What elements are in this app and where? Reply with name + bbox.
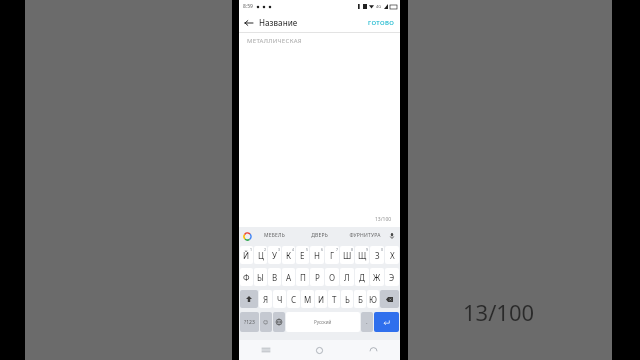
staticText: И [318, 294, 325, 305]
button[interactable]: П [296, 268, 309, 286]
button[interactable]: И [315, 290, 327, 308]
staticText: 4G [376, 4, 382, 9]
button[interactable]: М [301, 290, 314, 308]
staticText: 6 [321, 247, 324, 252]
button[interactable]: ☺ [260, 312, 272, 332]
button[interactable]: Ц [254, 246, 267, 264]
staticText: Э [389, 272, 395, 283]
staticText: Ш [343, 250, 352, 261]
staticText: Ж [373, 272, 381, 283]
button[interactable]: ФУРНИТУРА [342, 227, 387, 244]
staticText: О [329, 272, 336, 283]
staticText: Д [359, 272, 365, 283]
staticText: Ь [345, 294, 350, 305]
staticText: ФУРНИТУРА [349, 232, 381, 239]
button[interactable]: Б [354, 290, 366, 308]
button[interactable]: Enter [374, 312, 399, 332]
staticText: 9 [366, 247, 369, 252]
staticText: М [304, 294, 312, 305]
button[interactable]: Т [328, 290, 340, 308]
button[interactable]: Русский [286, 312, 360, 332]
staticText: 8:59 [243, 3, 253, 10]
button[interactable]: А [282, 268, 295, 286]
button[interactable]: Н [310, 246, 324, 264]
staticText: К [286, 250, 291, 261]
staticText: 0 [381, 247, 384, 252]
staticText: Л [344, 272, 350, 283]
staticText: 7 [336, 247, 339, 252]
staticText: С [291, 294, 297, 305]
staticText: МЕТАЛЛИЧЕСКАЯ [247, 37, 302, 45]
staticText: 13/100 [375, 216, 392, 223]
button[interactable]: Back [346, 340, 400, 360]
button[interactable]: Э [385, 268, 399, 286]
button[interactable]: Google [242, 231, 252, 241]
button[interactable]: ?123 [240, 312, 259, 332]
button[interactable]: Ф [240, 268, 253, 286]
button[interactable]: Р [310, 268, 324, 286]
button[interactable]: Recent apps [239, 340, 292, 360]
staticText: Й [243, 250, 250, 261]
staticText: Г [330, 250, 335, 261]
staticText: Ф [243, 272, 250, 283]
button[interactable]: Voice input [387, 231, 397, 241]
staticText: Б [358, 294, 363, 305]
staticText: Н [314, 250, 320, 261]
button[interactable]: Ь [341, 290, 353, 308]
staticText: З [375, 250, 380, 261]
button[interactable]: Ч [273, 290, 286, 308]
button[interactable]: В [268, 268, 281, 286]
button[interactable]: Ю [367, 290, 379, 308]
staticText: У [272, 250, 277, 261]
staticText: 8 [351, 247, 354, 252]
staticText: Ч [277, 294, 283, 305]
staticText: ДВЕРЬ [311, 232, 328, 239]
button[interactable]: Щ [355, 246, 369, 264]
staticText: Е [300, 250, 305, 261]
staticText: Х [390, 250, 395, 261]
button[interactable]: Я [259, 290, 272, 308]
button[interactable]: Back [242, 16, 256, 30]
staticText: 2 [264, 247, 267, 252]
staticText: ГОТОВО [368, 19, 395, 27]
button[interactable]: З [370, 246, 384, 264]
button[interactable]: ГОТОВО [363, 16, 400, 30]
button[interactable]: Х [385, 246, 399, 264]
staticText: В [272, 272, 278, 283]
staticText: МЕБЕЛЬ [264, 232, 285, 239]
button[interactable]: . [361, 312, 373, 332]
button[interactable]: О [325, 268, 339, 286]
staticText: П [300, 272, 306, 283]
button[interactable]: Е [296, 246, 309, 264]
button[interactable]: Д [355, 268, 369, 286]
staticText: Щ [358, 250, 367, 261]
staticText: Ы [257, 272, 264, 283]
button[interactable]: С [287, 290, 300, 308]
staticText: 1 [250, 247, 253, 252]
staticText: Я [263, 294, 269, 305]
button[interactable]: Г [325, 246, 339, 264]
button[interactable]: Л [340, 268, 354, 286]
button[interactable]: Change language [273, 312, 285, 332]
button[interactable]: Ы [254, 268, 267, 286]
button[interactable]: Backspace [380, 290, 399, 308]
button[interactable]: Shift [240, 290, 258, 308]
staticText: 3 [278, 247, 281, 252]
button[interactable]: У [268, 246, 281, 264]
staticText: Название [259, 17, 298, 28]
button[interactable]: Й [240, 246, 253, 264]
button[interactable]: Ж [370, 268, 384, 286]
staticText: 4 [292, 247, 295, 252]
button[interactable]: К [282, 246, 295, 264]
staticText: ☺ [263, 319, 269, 325]
staticText: Т [332, 294, 337, 305]
staticText: Ц [258, 250, 264, 261]
button[interactable]: Ш [340, 246, 354, 264]
staticText: . [366, 318, 368, 326]
staticText: Ю [369, 294, 377, 305]
button[interactable]: ДВЕРЬ [297, 227, 342, 244]
staticText: ?123 [244, 319, 255, 326]
staticText: 13/100 [463, 297, 535, 327]
button[interactable]: Home [292, 340, 346, 360]
button[interactable]: МЕБЕЛЬ [252, 227, 297, 244]
